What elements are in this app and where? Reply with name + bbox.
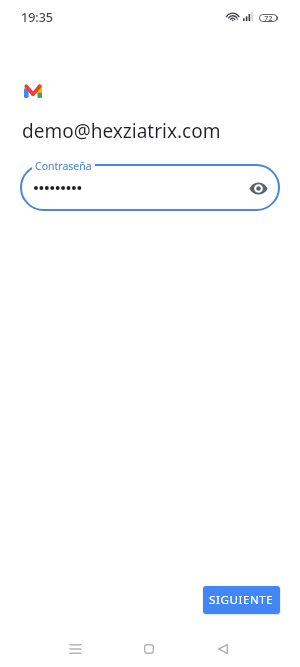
staticText: demo@hexziatrix.com <box>22 118 221 144</box>
staticText: 19:35 <box>21 9 54 26</box>
button[interactable]: Back <box>200 626 246 667</box>
staticText: Contraseña <box>35 159 92 173</box>
button[interactable]: Show password <box>20 164 280 211</box>
button[interactable]: SIGUIENTE <box>203 586 280 614</box>
button[interactable]: Show password <box>245 175 271 201</box>
staticText: 72 <box>264 13 273 23</box>
staticText: SIGUIENTE <box>209 592 274 608</box>
button[interactable]: Home <box>126 626 172 667</box>
button[interactable]: Recent apps <box>52 626 98 667</box>
